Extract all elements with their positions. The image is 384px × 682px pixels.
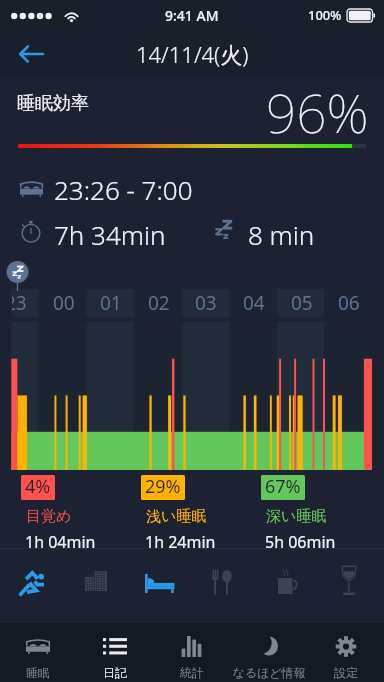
staticText: 日記 (103, 665, 127, 680)
staticText: 統計 (180, 665, 204, 680)
staticText: 深い睡眠 (266, 507, 327, 526)
staticText: 9:41 AM (165, 6, 219, 25)
button[interactable]: Work (64, 547, 128, 621)
staticText: 02 (148, 290, 170, 316)
button[interactable]: 4% (21, 475, 92, 553)
button[interactable]: 67% (261, 475, 332, 553)
staticText: 67% (265, 475, 301, 499)
button[interactable]: Exercise (0, 547, 64, 621)
staticText: 7h 34min (54, 217, 166, 252)
staticText: 23:26 - 7:00 (54, 172, 193, 207)
button[interactable]: なるほど情報 (230, 623, 307, 682)
staticText: 14/11/4(火) (136, 39, 249, 69)
button[interactable]: 日記 (76, 623, 153, 682)
button[interactable]: 統計 (153, 623, 230, 682)
staticText: 睡眠効率 (17, 92, 89, 115)
staticText: 05 (291, 290, 313, 316)
button[interactable]: Back (0, 30, 62, 77)
staticText: 4% (25, 475, 51, 499)
staticText: 浅い睡眠 (146, 507, 207, 526)
button[interactable]: Alcohol (320, 547, 384, 621)
button[interactable]: 設定 (307, 623, 384, 682)
staticText: 01 (100, 290, 122, 316)
staticText: 23 (12, 290, 27, 316)
button[interactable]: Coffee (256, 547, 320, 621)
staticText: 1h 04min (25, 531, 96, 553)
staticText: 設定 (334, 665, 358, 680)
staticText: 5h 06min (265, 531, 336, 553)
button[interactable]: Meal (192, 547, 256, 621)
staticText: 29% (145, 475, 181, 499)
button[interactable]: Sleep (128, 547, 192, 621)
staticText: 03 (195, 290, 217, 316)
button[interactable]: 睡眠 (0, 623, 76, 682)
staticText: なるほど情報 (232, 665, 306, 680)
staticText: 00 (53, 290, 75, 316)
staticText: 目覚め (26, 507, 72, 526)
staticText: 100% (308, 6, 342, 24)
staticText: 04 (243, 290, 265, 316)
staticText: 睡眠 (26, 665, 50, 680)
staticText: 06 (338, 290, 360, 316)
button[interactable]: 29% (141, 475, 212, 553)
staticText: 8 min (248, 217, 315, 252)
staticText: 96% (266, 76, 369, 148)
staticText: 1h 24min (145, 531, 216, 553)
